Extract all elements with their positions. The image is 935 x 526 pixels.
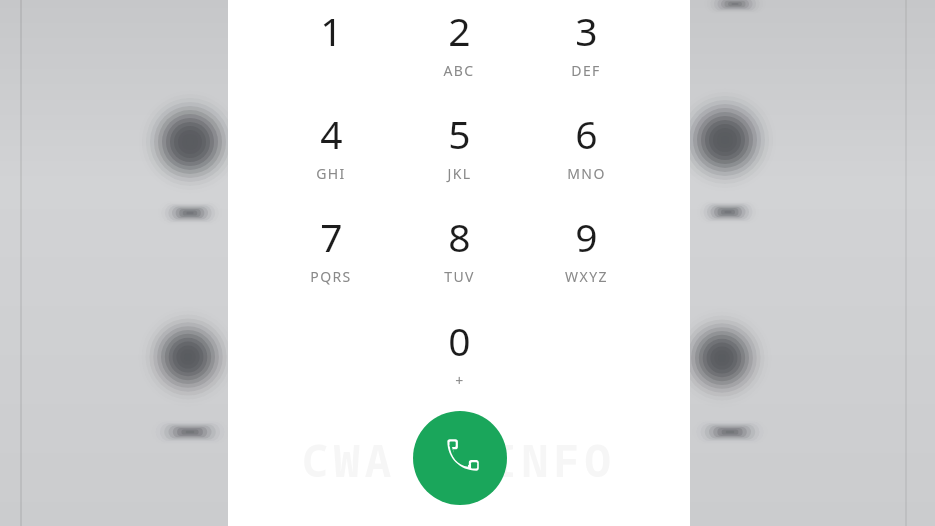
staticText: 3: [575, 4, 598, 57]
staticText: CWA INFO: [302, 430, 616, 486]
staticText: 0: [448, 314, 471, 367]
button[interactable]: 7: [283, 210, 379, 298]
staticText: 2: [448, 4, 471, 57]
staticText: TUV: [444, 267, 475, 286]
staticText: 1: [320, 4, 343, 57]
staticText: 8: [448, 210, 471, 263]
staticText: WXYZ: [565, 267, 608, 286]
staticText: ABC: [443, 61, 475, 80]
button[interactable]: 9: [538, 210, 634, 298]
staticText: MNO: [567, 164, 606, 183]
staticText: 9: [575, 210, 598, 263]
staticText: 6: [575, 107, 598, 160]
button[interactable]: 2: [411, 4, 507, 92]
button[interactable]: 8: [411, 210, 507, 298]
button[interactable]: 5: [411, 107, 507, 195]
staticText: 5: [448, 107, 471, 160]
staticText: DEF: [571, 61, 601, 80]
staticText: 7: [320, 210, 343, 263]
button[interactable]: Call: [413, 411, 507, 505]
button[interactable]: 0: [411, 314, 507, 402]
staticText: GHI: [316, 164, 346, 183]
button[interactable]: 1: [283, 4, 379, 92]
button[interactable]: 3: [538, 4, 634, 92]
staticText: 4: [320, 107, 343, 160]
button[interactable]: 6: [538, 107, 634, 195]
staticText: PQRS: [310, 267, 352, 286]
button[interactable]: 4: [283, 107, 379, 195]
staticText: JKL: [447, 164, 472, 183]
staticText: +: [455, 371, 465, 390]
